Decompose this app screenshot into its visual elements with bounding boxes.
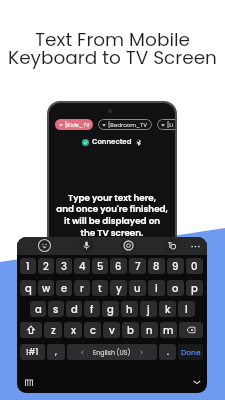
button[interactable]: !#1 xyxy=(20,344,45,360)
button[interactable]: . xyxy=(159,344,176,360)
button[interactable]: Backspace xyxy=(179,322,203,338)
staticText: q xyxy=(25,281,32,295)
staticText: 9 xyxy=(172,259,179,273)
button[interactable]: s xyxy=(48,301,64,317)
button[interactable]: x xyxy=(64,322,82,338)
staticText: m xyxy=(163,323,174,337)
button[interactable]: y xyxy=(110,280,127,296)
button[interactable]: d xyxy=(66,301,82,317)
button[interactable]: u xyxy=(129,280,146,296)
button[interactable]: [Li xyxy=(157,119,175,130)
staticText: s xyxy=(53,302,59,316)
button[interactable]: , xyxy=(47,344,65,360)
staticText: a xyxy=(35,302,42,316)
button[interactable]: Done xyxy=(178,344,203,360)
button[interactable]: c xyxy=(84,322,101,338)
button[interactable]: j xyxy=(140,301,157,317)
staticText: p xyxy=(191,281,198,295)
button[interactable]: 4 xyxy=(74,258,90,274)
button[interactable]: 5 xyxy=(92,258,108,274)
staticText: h xyxy=(126,302,133,316)
staticText: !#1 xyxy=(26,347,39,358)
staticText: t xyxy=(98,281,102,295)
staticText: o xyxy=(172,281,179,295)
staticText: r xyxy=(80,281,84,295)
button[interactable]: More options xyxy=(189,240,202,253)
staticText: 5 xyxy=(97,259,104,273)
staticText: 8 xyxy=(153,259,160,273)
staticText: j xyxy=(147,302,150,316)
button[interactable]: Translate xyxy=(164,238,179,253)
staticText: z xyxy=(51,323,56,337)
button[interactable]: w xyxy=(38,280,54,296)
button[interactable]: 1 xyxy=(20,258,36,274)
button[interactable]: v xyxy=(103,322,120,338)
button[interactable]: Hide keyboard xyxy=(189,374,205,390)
button[interactable]: h xyxy=(121,301,138,317)
button[interactable]: q xyxy=(20,280,36,296)
staticText: i xyxy=(155,281,158,295)
button[interactable]: g xyxy=(102,301,119,317)
button[interactable]: m xyxy=(160,322,177,338)
staticText: 1 xyxy=(26,259,30,273)
button[interactable]: Voice input xyxy=(79,238,94,253)
staticText: [Kids_TV] xyxy=(65,121,90,129)
staticText: l xyxy=(185,302,188,316)
button[interactable]: i xyxy=(148,280,165,296)
button[interactable]: Shift xyxy=(20,322,42,338)
staticText: 2 xyxy=(43,259,49,273)
staticText: Done xyxy=(181,347,201,357)
button[interactable]: [Kids_TV] xyxy=(55,119,93,130)
staticText: [Li xyxy=(167,121,174,129)
button[interactable]: Emoji xyxy=(37,238,52,253)
staticText: 0 xyxy=(191,259,198,273)
staticText: [Bedroom_TV] xyxy=(108,121,149,129)
staticText: w xyxy=(42,281,51,295)
staticText: Type your text here, and once you're fin… xyxy=(49,192,175,240)
staticText: 7 xyxy=(135,259,141,273)
button[interactable]: f xyxy=(84,301,100,317)
staticText: . xyxy=(167,347,169,358)
staticText: u xyxy=(134,281,141,295)
button[interactable]: Change keyboard xyxy=(21,375,37,391)
button[interactable]: l xyxy=(178,301,195,317)
staticText: e xyxy=(61,281,68,295)
button[interactable]: z xyxy=(44,322,62,338)
button[interactable]: e xyxy=(56,280,72,296)
staticText: b xyxy=(127,323,134,337)
staticText: English (US) xyxy=(93,348,131,357)
button[interactable]: 2 xyxy=(38,258,54,274)
button[interactable]: 3 xyxy=(56,258,72,274)
button[interactable]: English (US) xyxy=(67,344,157,360)
button[interactable]: [Bedroom_TV] xyxy=(98,119,152,130)
staticText: n xyxy=(146,323,153,337)
button[interactable]: n xyxy=(141,322,158,338)
staticText: d xyxy=(71,302,78,316)
staticText: y xyxy=(116,281,122,295)
button[interactable]: 0 xyxy=(186,258,203,274)
button[interactable]: a xyxy=(30,301,46,317)
staticText: , xyxy=(55,347,57,358)
button[interactable]: 9 xyxy=(167,258,184,274)
button[interactable]: o xyxy=(167,280,184,296)
button[interactable]: p xyxy=(186,280,203,296)
staticText: c xyxy=(90,323,96,337)
staticText: g xyxy=(107,302,114,316)
staticText: v xyxy=(109,323,115,337)
button[interactable]: b xyxy=(122,322,139,338)
staticText: Connected xyxy=(92,137,132,147)
button[interactable]: 7 xyxy=(129,258,146,274)
button[interactable]: k xyxy=(159,301,176,317)
button[interactable]: 8 xyxy=(148,258,165,274)
staticText: 4 xyxy=(79,259,86,273)
button[interactable]: Settings xyxy=(121,238,136,253)
button[interactable]: 6 xyxy=(110,258,127,274)
staticText: Text From Mobile Keyboard to TV Screen xyxy=(0,27,225,71)
staticText: x xyxy=(71,323,76,337)
staticText: k xyxy=(165,302,171,316)
button[interactable]: r xyxy=(74,280,90,296)
staticText: f xyxy=(90,302,94,316)
staticText: 6 xyxy=(115,259,122,273)
staticText: 3 xyxy=(61,259,67,273)
button[interactable]: t xyxy=(92,280,108,296)
